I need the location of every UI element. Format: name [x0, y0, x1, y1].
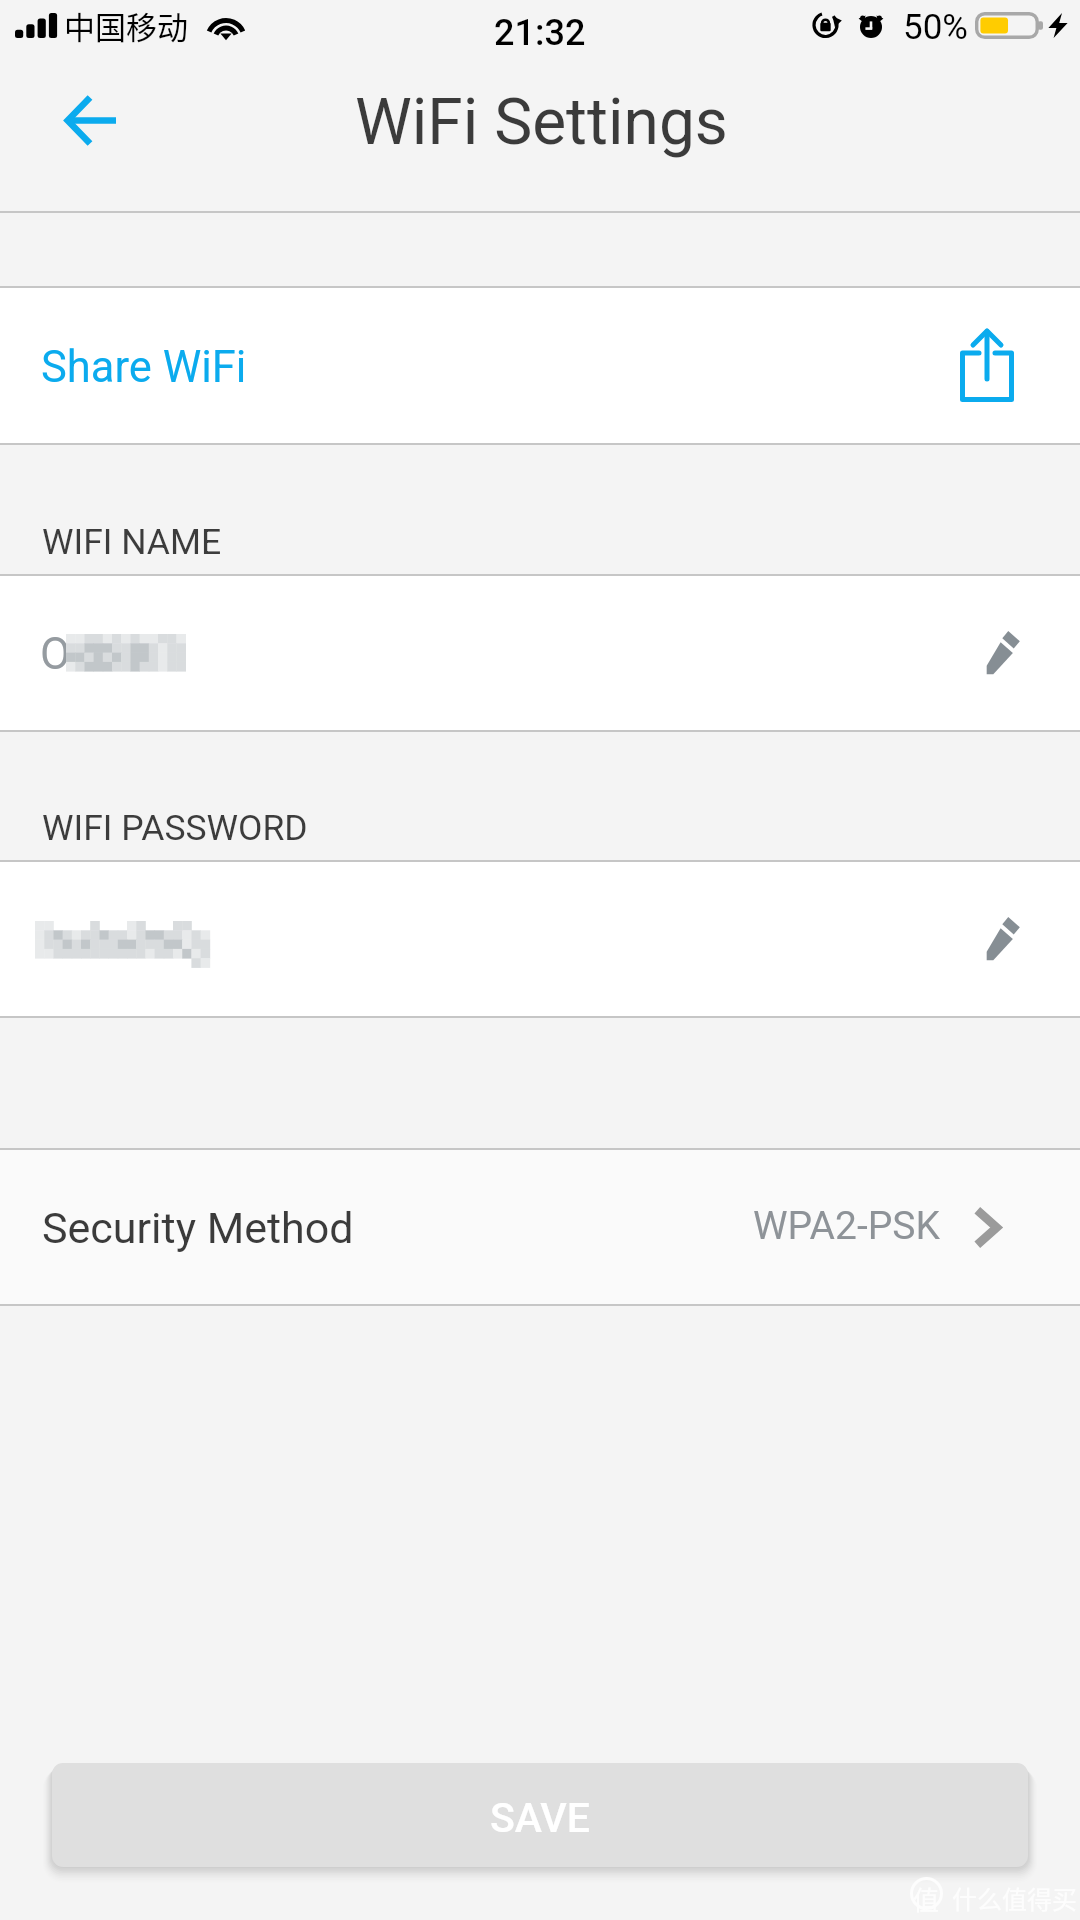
staticText: O [40, 628, 71, 680]
staticText: SAVE [490, 1794, 590, 1842]
button[interactable]: Edit [925, 862, 1080, 1016]
staticText: WIFI NAME [42, 521, 222, 563]
button[interactable]: Share WiFi [925, 288, 1080, 443]
button[interactable]: Back [27, 60, 167, 180]
staticText: 21:32 [494, 12, 586, 54]
button[interactable]: Security Method [0, 1150, 1080, 1304]
button[interactable]: SAVE [52, 1763, 1028, 1867]
staticText: WPA2-PSK [753, 1203, 940, 1249]
button[interactable]: Share WiFi [0, 288, 1080, 443]
staticText: WIFI PASSWORD [42, 807, 308, 849]
staticText: Security Method [42, 1203, 354, 1253]
staticText: 50% [903, 7, 968, 48]
staticText: 什么值得买 [952, 1880, 1078, 1916]
staticText: WiFi Settings [355, 85, 728, 160]
staticText: 值 [913, 1880, 940, 1918]
staticText: Share WiFi [41, 342, 247, 393]
button[interactable]: Edit [925, 576, 1080, 730]
staticText: 中国移动 [64, 3, 188, 48]
